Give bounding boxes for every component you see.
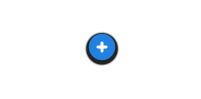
button[interactable]: Add [80,25,124,69]
